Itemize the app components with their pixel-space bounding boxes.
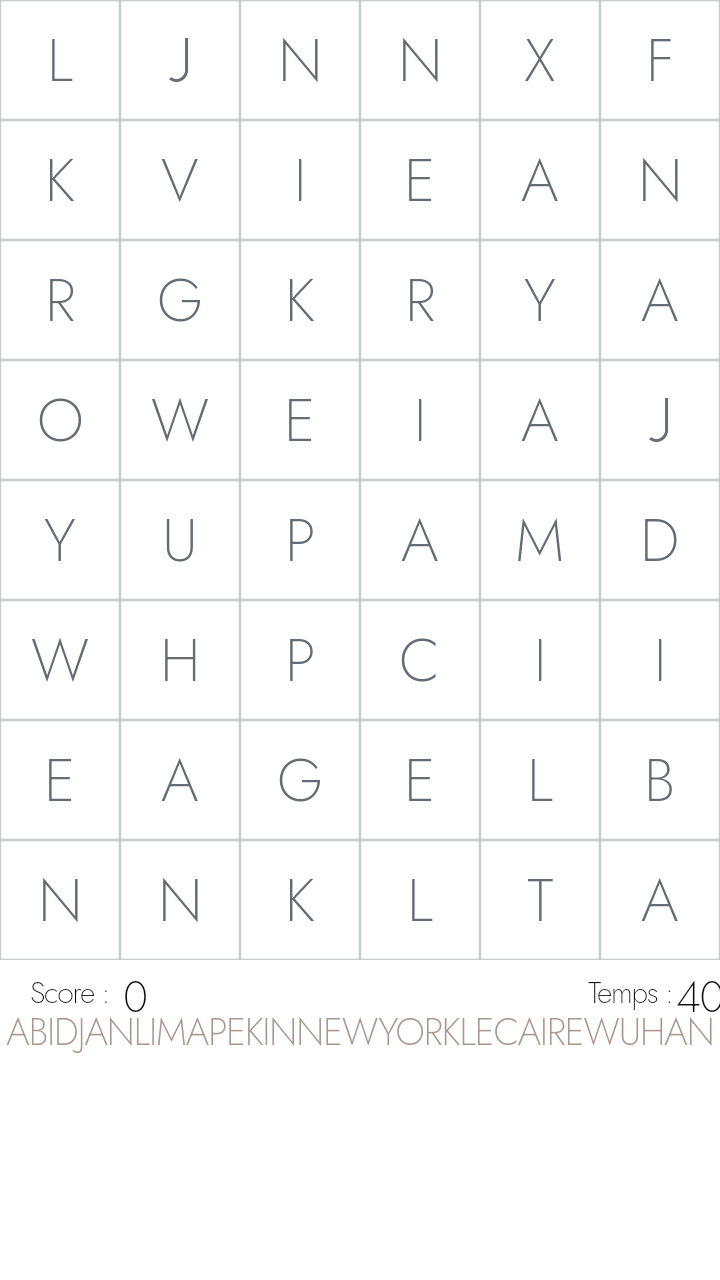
staticText: A [161,737,199,824]
staticText: O [37,377,84,464]
button[interactable]: A [480,360,600,480]
staticText: ABIDJANLIMAPEKINNEWYORKLECAIREWUHAN [0,1005,720,1059]
button[interactable]: N [240,0,360,120]
staticText: U [162,497,198,584]
staticText: D [640,497,680,584]
button[interactable]: L [480,720,600,840]
button[interactable]: A [120,720,240,840]
button[interactable]: K [240,240,360,360]
staticText: W [151,377,209,464]
button[interactable]: G [120,240,240,360]
staticText: P [285,497,316,584]
button[interactable]: J [120,0,240,120]
button[interactable]: A [600,840,720,960]
button[interactable]: Y [0,480,120,600]
staticText: R [405,257,436,344]
staticText: I [414,377,427,464]
button[interactable]: T [480,840,600,960]
button[interactable]: I [480,600,600,720]
staticText: V [161,137,199,224]
button[interactable]: E [360,720,480,840]
staticText: E [284,377,316,464]
button[interactable]: N [360,0,480,120]
button[interactable]: D [600,480,720,600]
button[interactable]: C [360,600,480,720]
button[interactable]: H [120,600,240,720]
staticText: K [45,137,75,224]
staticText: 40 [676,965,720,1021]
staticText: Y [44,497,76,584]
staticText: K [285,857,315,944]
staticText: C [399,617,441,704]
button[interactable]: L [360,840,480,960]
button[interactable]: X [480,0,600,120]
staticText: M [515,497,565,584]
staticText: B [644,737,676,824]
button[interactable]: M [480,480,600,600]
staticText: G [277,737,324,824]
staticText: F [646,17,675,104]
staticText: N [38,857,83,944]
staticText: Y [524,257,556,344]
button[interactable]: U [120,480,240,600]
staticText: N [638,137,683,224]
button[interactable]: P [240,600,360,720]
button[interactable]: G [240,720,360,840]
staticText: I [654,617,667,704]
button[interactable]: R [360,240,480,360]
staticText: L [47,17,74,104]
staticText: P [285,617,316,704]
staticText: H [160,617,201,704]
staticText: T [527,857,554,944]
button[interactable]: I [240,120,360,240]
button[interactable]: B [600,720,720,840]
button[interactable]: E [0,720,120,840]
staticText: L [407,857,434,944]
button[interactable]: I [600,600,720,720]
staticText: I [534,617,547,704]
button[interactable]: A [360,480,480,600]
button[interactable]: O [0,360,120,480]
staticText: N [158,857,203,944]
staticText: W [31,617,89,704]
button[interactable]: E [360,120,480,240]
button[interactable]: I [360,360,480,480]
staticText: 0 [123,965,147,1021]
staticText: G [157,257,204,344]
button[interactable]: N [120,840,240,960]
button[interactable]: N [600,120,720,240]
staticText: A [521,137,559,224]
button[interactable]: N [0,840,120,960]
staticText: E [404,737,436,824]
button[interactable]: P [240,480,360,600]
button[interactable]: A [600,240,720,360]
staticText: K [285,257,315,344]
button[interactable]: A [480,120,600,240]
button[interactable]: V [120,120,240,240]
button[interactable]: L [0,0,120,120]
button[interactable]: R [0,240,120,360]
staticText: R [45,257,76,344]
button[interactable]: F [600,0,720,120]
staticText: A [521,377,559,464]
button[interactable]: K [240,840,360,960]
button[interactable]: K [0,120,120,240]
staticText: E [44,737,76,824]
button[interactable]: J [600,360,720,480]
button[interactable]: Y [480,240,600,360]
staticText: A [641,257,679,344]
staticText: A [401,497,439,584]
button[interactable]: W [120,360,240,480]
button[interactable]: W [0,600,120,720]
staticText: J [648,383,672,457]
staticText: I [294,137,307,224]
staticText: Temps : [588,971,673,1014]
staticText: N [278,17,323,104]
staticText: A [641,857,679,944]
button[interactable]: E [240,360,360,480]
staticText: E [404,137,436,224]
staticText: L [527,737,554,824]
staticText: X [524,17,556,104]
staticText: J [168,23,192,97]
staticText: N [398,17,443,104]
